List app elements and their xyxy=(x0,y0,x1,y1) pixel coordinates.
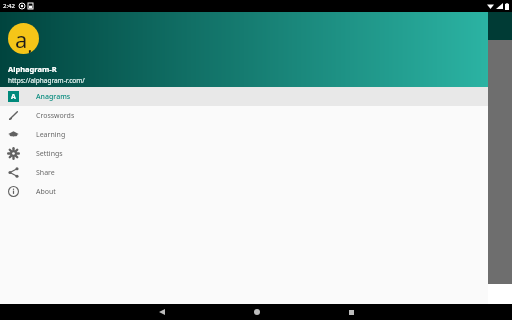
staticText: a xyxy=(15,24,28,54)
staticText: Anagrams xyxy=(36,92,71,102)
button[interactable]: More options xyxy=(8,178,18,190)
button[interactable]: Share xyxy=(0,163,488,182)
button[interactable]: Crosswords xyxy=(0,106,488,125)
button[interactable]: About xyxy=(0,182,488,201)
staticText: Crosswords xyxy=(36,111,75,121)
staticText: 2:42 xyxy=(3,2,15,10)
button[interactable]: Learning xyxy=(0,125,488,144)
staticText: Learning xyxy=(36,130,66,140)
staticText: Alphagram-R xyxy=(8,64,57,74)
button[interactable]: More options xyxy=(8,74,18,86)
staticText: A xyxy=(11,92,16,102)
staticText: Share xyxy=(36,168,55,178)
button[interactable]: Sort xyxy=(2,46,22,64)
button[interactable]: Recents xyxy=(304,304,399,320)
button[interactable]: Settings xyxy=(0,144,488,163)
button[interactable]: Back xyxy=(114,304,209,320)
button[interactable]: More options xyxy=(8,152,18,164)
staticText: ∎ xyxy=(28,47,32,54)
staticText: Settings xyxy=(36,149,63,159)
button[interactable]: Home xyxy=(209,304,304,320)
button[interactable]: More options xyxy=(8,100,18,112)
staticText: A xyxy=(10,50,15,60)
button[interactable]: A xyxy=(0,87,488,106)
button[interactable]: More options xyxy=(8,126,18,138)
staticText: About xyxy=(36,187,56,197)
staticText: https://alphagram-r.com/ xyxy=(8,76,85,85)
